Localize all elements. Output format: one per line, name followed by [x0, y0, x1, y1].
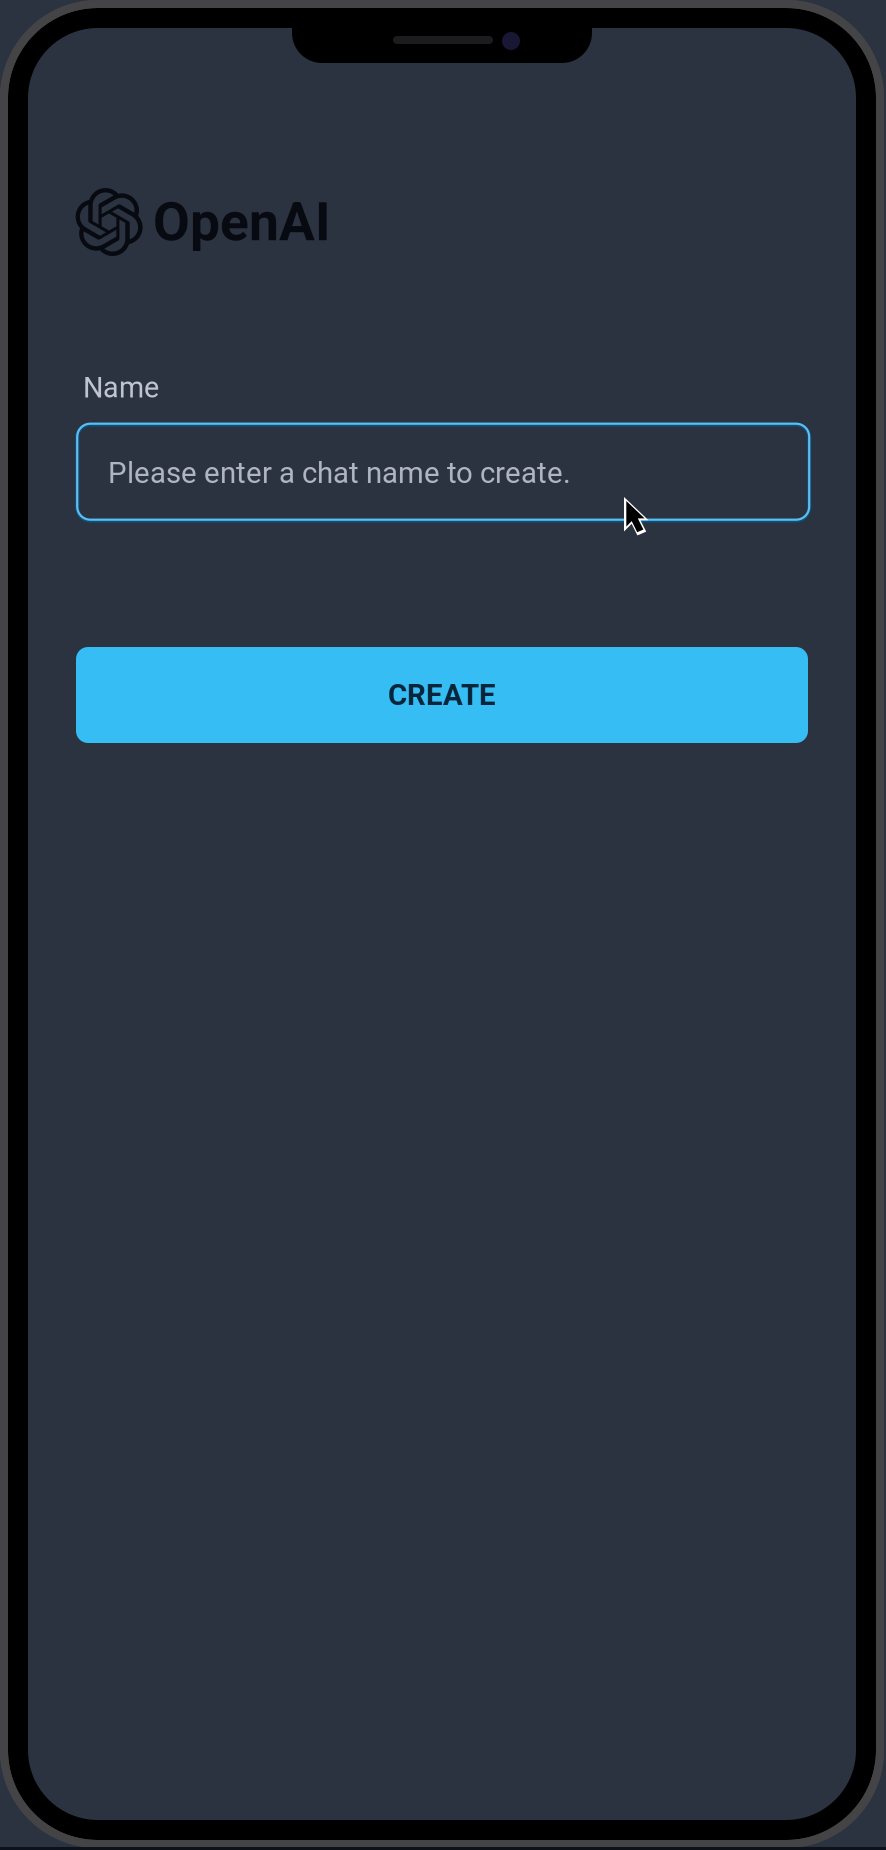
- staticText: CREATE: [388, 678, 496, 712]
- button[interactable]: CREATE: [76, 647, 808, 743]
- staticText: OpenAI: [153, 191, 331, 253]
- staticText: Name: [83, 371, 159, 405]
- staticText: Please enter a chat name to create.: [108, 456, 571, 490]
- button[interactable]: Please enter a chat name to create.: [76, 423, 808, 519]
